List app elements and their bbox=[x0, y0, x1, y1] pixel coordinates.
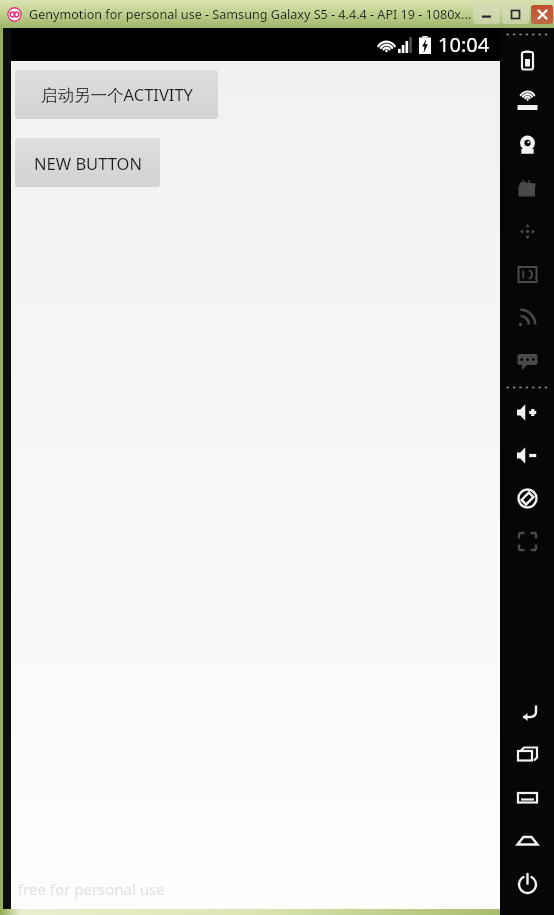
button[interactable]: Volume up bbox=[500, 391, 554, 434]
button[interactable]: Menu bbox=[500, 776, 554, 819]
button[interactable]: 启动另一个ACTIVITY bbox=[15, 70, 218, 119]
button[interactable]: Home bbox=[500, 819, 554, 862]
button[interactable]: NEW BUTTON bbox=[15, 138, 160, 187]
button[interactable]: Minimize bbox=[473, 5, 500, 24]
button[interactable]: Camera bbox=[500, 124, 554, 167]
button[interactable]: Back bbox=[500, 690, 554, 733]
button[interactable]: Volume down bbox=[500, 434, 554, 477]
staticText: Genymotion for personal use - Samsung Ga… bbox=[29, 6, 472, 23]
button[interactable]: Close bbox=[531, 5, 553, 24]
staticText: NEW BUTTON bbox=[34, 152, 142, 174]
button[interactable]: Power bbox=[500, 862, 554, 905]
button[interactable]: Identifiers bbox=[500, 253, 554, 296]
button[interactable]: Battery bbox=[500, 38, 554, 81]
staticText: 10:04 bbox=[438, 31, 490, 58]
button[interactable]: Maximize bbox=[502, 5, 529, 24]
button[interactable]: Video bbox=[500, 167, 554, 210]
button[interactable]: Recents bbox=[500, 733, 554, 776]
button[interactable]: Network bbox=[500, 296, 554, 339]
button[interactable]: Rotate bbox=[500, 477, 554, 520]
button[interactable]: Screenshot bbox=[500, 520, 554, 563]
button[interactable]: Motion sensor bbox=[500, 210, 554, 253]
staticText: free for personal use bbox=[18, 879, 165, 899]
staticText: 启动另一个ACTIVITY bbox=[41, 83, 193, 106]
button[interactable]: SMS bbox=[500, 339, 554, 382]
button[interactable]: GPS bbox=[500, 81, 554, 124]
